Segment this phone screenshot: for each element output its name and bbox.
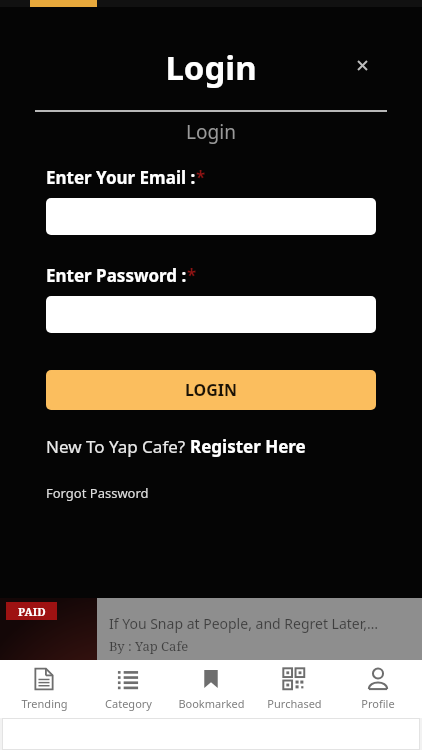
button[interactable]: New To Yap Cafe? bbox=[46, 435, 306, 458]
button[interactable]: Trending bbox=[5, 663, 83, 715]
button[interactable]: Forgot Password bbox=[46, 484, 149, 502]
staticText: Bookmarked bbox=[178, 696, 245, 711]
staticText: Login bbox=[0, 119, 422, 145]
staticText: Enter Your Email : bbox=[46, 166, 196, 189]
staticText: Category bbox=[105, 696, 152, 711]
staticText: Profile bbox=[361, 696, 395, 711]
other: Purchased bbox=[282, 667, 306, 691]
staticText: * bbox=[196, 166, 206, 189]
staticText: New To Yap Cafe? bbox=[46, 435, 190, 458]
button[interactable]: Purchased bbox=[255, 663, 333, 715]
staticText: By : Yap Cafe bbox=[109, 637, 189, 655]
staticText: Enter Password : bbox=[46, 264, 187, 287]
staticText: * bbox=[187, 264, 197, 287]
other: Bookmarked bbox=[199, 667, 223, 691]
other: Profile bbox=[366, 667, 390, 691]
other: Trending bbox=[32, 667, 56, 691]
button[interactable]: Profile bbox=[339, 663, 417, 715]
staticText: PAID bbox=[18, 604, 46, 619]
button[interactable]: Category bbox=[89, 663, 167, 715]
staticText: Trending bbox=[21, 696, 68, 711]
staticText: Login bbox=[0, 45, 422, 90]
staticText: Register Here bbox=[190, 435, 306, 458]
staticText: LOGIN bbox=[185, 379, 238, 401]
button[interactable]: LOGIN bbox=[46, 370, 376, 410]
staticText: If You Snap at People, and Regret Later,… bbox=[109, 614, 379, 633]
other: Category bbox=[116, 667, 140, 691]
button[interactable] bbox=[46, 296, 376, 333]
staticText: Purchased bbox=[267, 696, 322, 711]
button[interactable]: Close bbox=[348, 51, 376, 79]
button[interactable]: Bookmarked bbox=[172, 663, 250, 715]
button[interactable] bbox=[46, 198, 376, 235]
button[interactable]: PAID bbox=[0, 598, 422, 667]
staticText: Forgot Password bbox=[46, 484, 149, 502]
